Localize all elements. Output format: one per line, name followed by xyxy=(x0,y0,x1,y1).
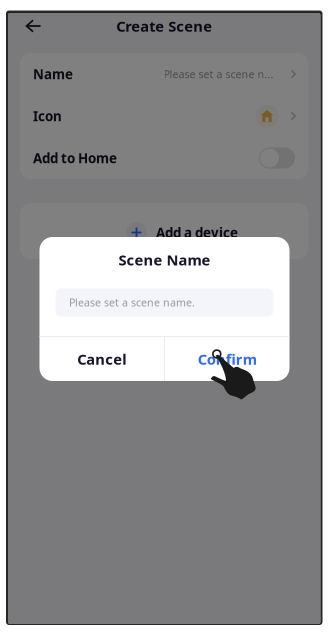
staticText: Create Scene xyxy=(116,16,212,36)
staticText: Name xyxy=(33,65,73,83)
button[interactable]: Name xyxy=(20,53,308,95)
staticText: Add a device xyxy=(156,224,238,241)
staticText: Please set a scene n... xyxy=(163,67,273,81)
button[interactable]: Cancel xyxy=(39,337,164,381)
staticText: Cancel xyxy=(77,349,126,369)
staticText: Scene Name xyxy=(118,250,210,269)
button[interactable]: Add to Home xyxy=(259,147,295,168)
staticText: Icon xyxy=(33,107,62,125)
staticText: Add to Home xyxy=(33,149,117,167)
staticText: Please set a scene name. xyxy=(69,295,195,310)
button[interactable]: Confirm xyxy=(165,337,289,381)
staticText: Confirm xyxy=(198,349,257,369)
button[interactable]: Add a device xyxy=(20,203,308,259)
button[interactable]: Icon xyxy=(20,95,308,137)
button[interactable]: Back xyxy=(8,13,50,39)
